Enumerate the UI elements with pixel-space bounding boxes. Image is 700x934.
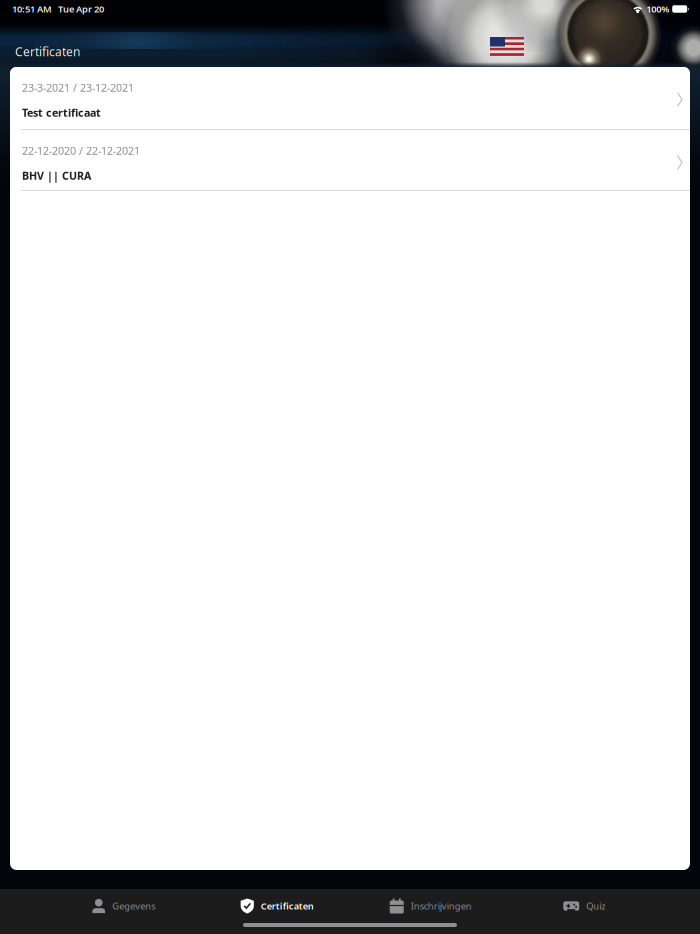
staticText: BHV || CURA bbox=[22, 168, 91, 183]
button[interactable]: 23-3-2021 / 23-12-2021 bbox=[10, 67, 690, 130]
staticText: Quiz bbox=[586, 900, 605, 912]
button[interactable]: 22-12-2020 / 22-12-2021 bbox=[10, 130, 690, 191]
staticText: Test certificaat bbox=[22, 105, 101, 120]
staticText: 23-3-2021 / 23-12-2021 bbox=[22, 80, 134, 95]
button[interactable]: Inschrijvingen bbox=[354, 889, 507, 923]
button[interactable]: Certificaten bbox=[200, 889, 354, 923]
staticText: 10:51 AM Tue Apr 20 bbox=[12, 3, 104, 15]
staticText: Gegevens bbox=[112, 900, 155, 912]
staticText: Certificaten bbox=[261, 900, 314, 912]
staticText: 22-12-2020 / 22-12-2021 bbox=[22, 143, 140, 158]
button[interactable]: Gegevens bbox=[47, 889, 200, 923]
button[interactable]: Quiz bbox=[507, 889, 661, 923]
staticText: Inschrijvingen bbox=[411, 900, 472, 912]
staticText: Certificaten bbox=[15, 43, 80, 59]
staticText: 100% bbox=[646, 3, 669, 15]
